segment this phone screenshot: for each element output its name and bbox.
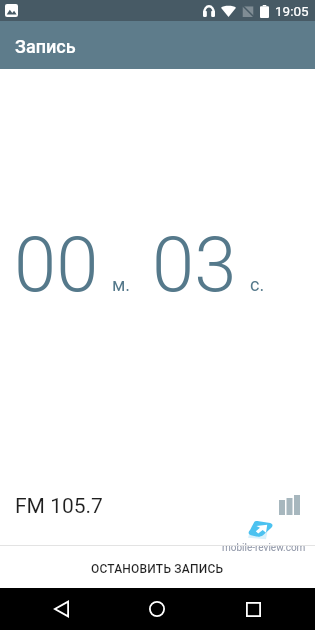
button[interactable]: Home — [133, 588, 181, 630]
staticText: с. — [250, 274, 265, 295]
staticText: м. — [112, 274, 131, 295]
button[interactable]: Back — [37, 588, 85, 630]
staticText: 19:05 — [275, 3, 309, 19]
staticText: FM 105.7 — [15, 494, 103, 519]
staticText: Запись — [15, 36, 76, 57]
button[interactable]: Recent apps — [229, 588, 277, 630]
staticText: ОСТАНОВИТЬ ЗАПИСЬ — [91, 562, 224, 576]
staticText: 00 — [14, 220, 99, 309]
staticText: 03 — [152, 220, 237, 309]
staticText: mobile-review.com — [222, 542, 306, 554]
button[interactable]: ОСТАНОВИТЬ ЗАПИСЬ — [0, 546, 315, 588]
